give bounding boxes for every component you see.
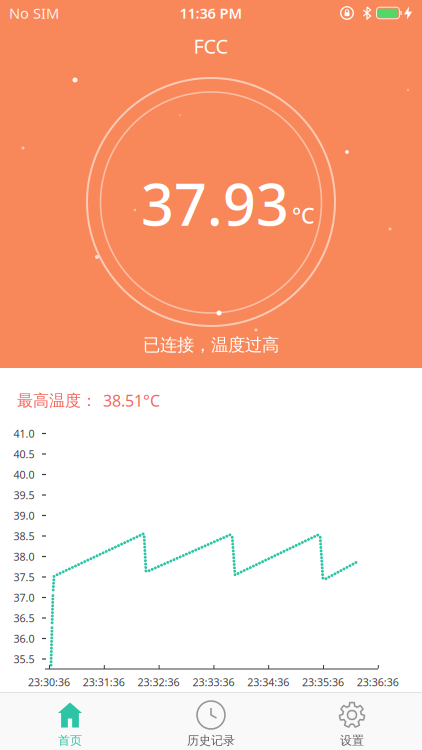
- staticText: 已连接，温度过高: [143, 334, 279, 356]
- staticText: 11:36 PM: [179, 3, 242, 23]
- button[interactable]: 首页: [0, 692, 140, 749]
- staticText: 首页: [58, 733, 82, 748]
- staticText: °C: [292, 201, 315, 229]
- staticText: 37.0: [13, 590, 34, 605]
- staticText: No SIM: [9, 3, 59, 23]
- staticText: 38.0: [13, 549, 34, 564]
- staticText: 38.5: [13, 529, 34, 543]
- staticText: FCC: [193, 33, 228, 59]
- staticText: 最高温度：: [17, 391, 97, 410]
- button[interactable]: 设置: [282, 692, 422, 749]
- staticText: 设置: [340, 733, 364, 748]
- staticText: 38.51°C: [103, 390, 160, 411]
- staticText: 36.5: [13, 611, 34, 625]
- staticText: 历史记录: [187, 733, 235, 748]
- staticText: 23:31:36: [83, 675, 125, 689]
- staticText: 36.0: [13, 631, 34, 646]
- staticText: 23:34:36: [247, 675, 289, 689]
- staticText: 39.5: [13, 488, 34, 502]
- staticText: 40.0: [13, 467, 34, 482]
- staticText: 23:33:36: [192, 675, 234, 689]
- button[interactable]: 历史记录: [141, 692, 281, 749]
- staticText: 35.5: [13, 652, 34, 666]
- staticText: 37.5: [13, 570, 34, 584]
- staticText: 41.0: [13, 426, 34, 441]
- staticText: 39.0: [13, 508, 34, 523]
- staticText: 37.93: [141, 165, 289, 241]
- staticText: 40.5: [13, 447, 34, 461]
- staticText: 23:36:36: [357, 675, 399, 689]
- staticText: 23:32:36: [138, 675, 180, 689]
- staticText: 23:35:36: [302, 675, 344, 689]
- staticText: 23:30:36: [28, 675, 70, 689]
